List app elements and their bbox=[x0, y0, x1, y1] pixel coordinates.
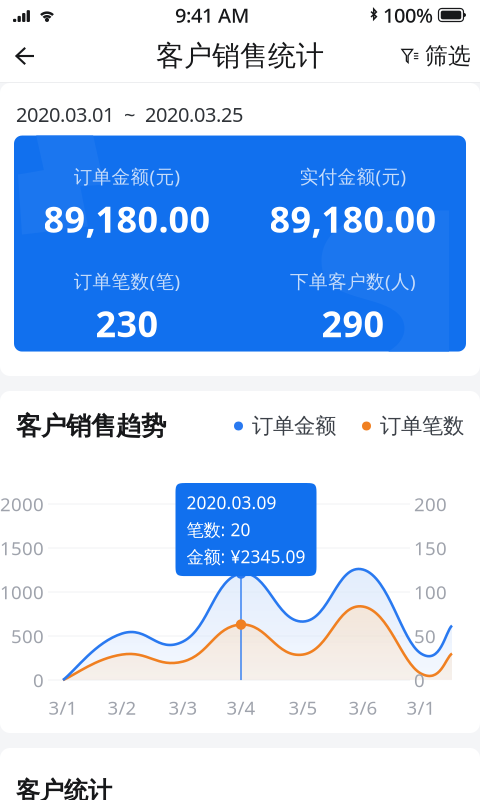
staticText: 100% bbox=[383, 2, 433, 28]
staticText: 订单笔数(笔) bbox=[73, 269, 180, 293]
button[interactable]: 筛选 bbox=[391, 30, 480, 82]
staticText: 2020.03.09 bbox=[186, 491, 276, 514]
button[interactable]: Back bbox=[0, 30, 48, 82]
staticText: 金额: ¥2345.09 bbox=[186, 545, 305, 568]
staticText: 3/3 bbox=[168, 695, 197, 720]
staticText: 3/5 bbox=[288, 695, 317, 720]
staticText: 50 bbox=[414, 624, 436, 648]
staticText: 3/1 bbox=[406, 695, 435, 720]
staticText: 实付金额(元) bbox=[299, 164, 406, 189]
staticText: 3/6 bbox=[348, 695, 377, 720]
staticText: 9:41 AM bbox=[175, 2, 249, 28]
staticText: 200 bbox=[414, 492, 447, 516]
staticText: 100 bbox=[414, 580, 447, 604]
staticText: 笔数: 20 bbox=[186, 518, 250, 541]
staticText: 290 bbox=[321, 299, 384, 347]
staticText: 89,180.00 bbox=[269, 195, 436, 243]
staticText: 1500 bbox=[0, 536, 44, 560]
staticText: 3/2 bbox=[107, 695, 136, 720]
staticText: 500 bbox=[11, 624, 44, 648]
staticText: 客户销售趋势 bbox=[16, 410, 166, 441]
staticText: 客户统计 bbox=[16, 776, 112, 800]
staticText: 230 bbox=[95, 299, 158, 347]
staticText: 客户销售统计 bbox=[156, 39, 324, 73]
staticText: 3/4 bbox=[226, 695, 255, 720]
staticText: 订单笔数 bbox=[380, 413, 464, 439]
staticText: 89,180.00 bbox=[43, 195, 210, 243]
staticText: 0 bbox=[414, 668, 425, 692]
staticText: 150 bbox=[414, 536, 447, 560]
staticText: 0 bbox=[33, 668, 44, 692]
staticText: 3/1 bbox=[48, 695, 77, 720]
staticText: 下单客户数(人) bbox=[290, 269, 416, 293]
staticText: 筛选 bbox=[425, 42, 471, 70]
staticText: 订单金额 bbox=[252, 413, 336, 439]
staticText: 2000 bbox=[0, 492, 44, 516]
staticText: 1000 bbox=[0, 580, 44, 604]
staticText: 2020.03.01 ~ 2020.03.25 bbox=[16, 101, 243, 128]
staticText: 订单金额(元) bbox=[73, 164, 180, 189]
